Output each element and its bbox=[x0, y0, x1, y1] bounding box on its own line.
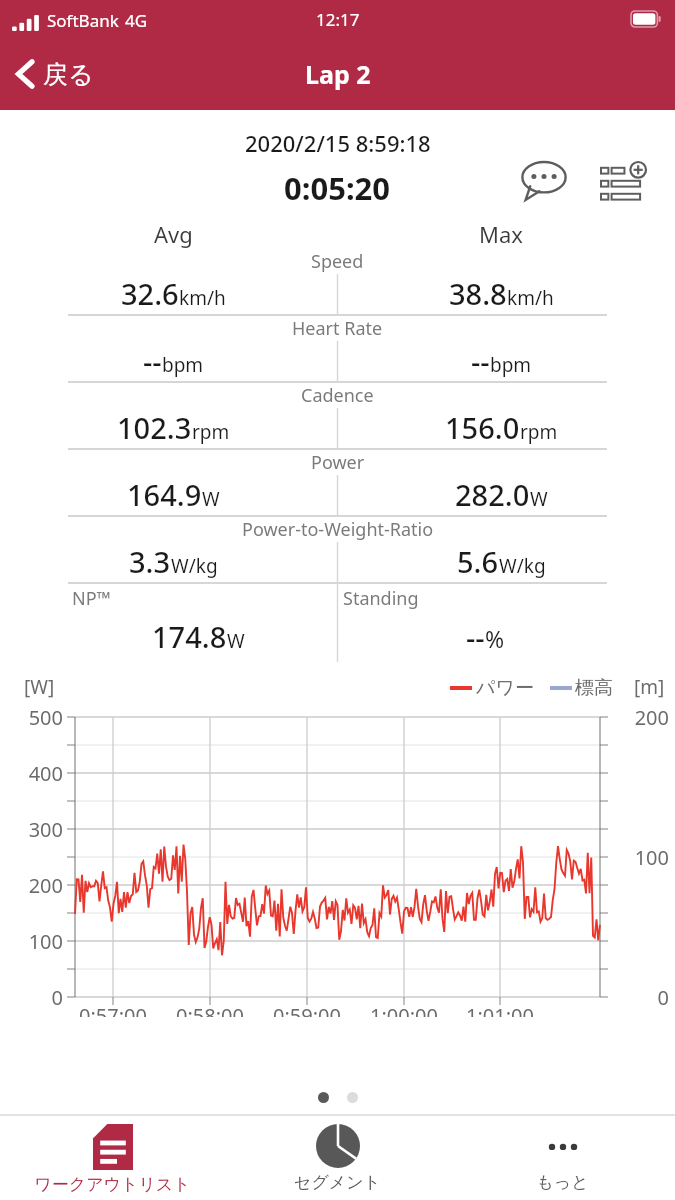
staticText: Heart Rate bbox=[292, 316, 383, 341]
staticText: 0:58:00 bbox=[162, 1002, 258, 1017]
staticText: 300 bbox=[8, 816, 63, 843]
staticText: W/kg bbox=[171, 553, 218, 579]
button[interactable]: ワークアウトリスト bbox=[0, 1116, 225, 1200]
staticText: -- bbox=[471, 341, 490, 380]
staticText: 0:05:20 bbox=[284, 167, 391, 209]
staticText: 1:00:00 bbox=[356, 1002, 452, 1017]
button[interactable]: Add to list bbox=[595, 155, 653, 207]
staticText: Power-to-Weight-Ratio bbox=[242, 517, 434, 542]
staticText: Speed bbox=[311, 249, 364, 274]
staticText: Lap 2 bbox=[305, 57, 371, 91]
button[interactable]: セグメント bbox=[225, 1116, 450, 1200]
staticText: 38.8 bbox=[449, 274, 507, 313]
staticText: W bbox=[227, 628, 245, 654]
staticText: セグメント bbox=[294, 1172, 381, 1193]
staticText: 2020/2/15 8:59:18 bbox=[245, 128, 431, 158]
staticText: Avg bbox=[154, 219, 193, 249]
staticText: 0 bbox=[8, 984, 63, 1011]
staticText: 102.3 bbox=[117, 408, 192, 447]
staticText: 0:59:00 bbox=[259, 1002, 355, 1017]
staticText: 5.6 bbox=[457, 542, 499, 581]
button[interactable]: Comments bbox=[515, 156, 573, 206]
staticText: bpm bbox=[162, 352, 204, 378]
staticText: 1:01:00 bbox=[452, 1002, 548, 1017]
staticText: km/h bbox=[507, 285, 554, 311]
staticText: Max bbox=[479, 219, 523, 249]
staticText: パワー bbox=[476, 676, 534, 700]
staticText: rpm bbox=[192, 419, 230, 445]
staticText: % bbox=[485, 623, 505, 654]
staticText: 戻る bbox=[43, 59, 94, 90]
staticText: 12:17 bbox=[316, 8, 360, 31]
staticText: W/kg bbox=[499, 553, 546, 579]
staticText: 174.8 bbox=[152, 617, 227, 656]
staticText: 0:57:00 bbox=[65, 1002, 161, 1017]
staticText: 156.0 bbox=[445, 408, 520, 447]
staticText: 標高 bbox=[575, 676, 613, 700]
staticText: [W] bbox=[24, 674, 55, 700]
staticText: Standing bbox=[343, 586, 419, 611]
staticText: 100 bbox=[8, 928, 63, 955]
staticText: ワークアウトリスト bbox=[34, 1174, 191, 1195]
staticText: 282.0 bbox=[455, 475, 530, 514]
staticText: 0 bbox=[619, 984, 669, 1011]
staticText: 500 bbox=[8, 704, 63, 731]
staticText: rpm bbox=[520, 419, 558, 445]
staticText: Cadence bbox=[301, 383, 374, 408]
staticText: W bbox=[530, 486, 548, 512]
staticText: Power bbox=[311, 450, 365, 475]
staticText: -- bbox=[466, 617, 485, 656]
staticText: [m] bbox=[634, 674, 665, 700]
staticText: 4G bbox=[125, 9, 148, 32]
staticText: -- bbox=[143, 341, 162, 380]
staticText: 200 bbox=[619, 704, 669, 731]
staticText: 32.6 bbox=[121, 274, 179, 313]
staticText: W bbox=[202, 486, 220, 512]
staticText: km/h bbox=[179, 285, 226, 311]
staticText: 400 bbox=[8, 760, 63, 787]
staticText: 3.3 bbox=[129, 542, 171, 581]
staticText: 100 bbox=[619, 844, 669, 871]
staticText: もっと bbox=[536, 1172, 589, 1193]
staticText: NP™ bbox=[72, 586, 111, 611]
staticText: bpm bbox=[490, 352, 532, 378]
button[interactable]: もっと bbox=[450, 1116, 675, 1200]
button[interactable]: 戻る bbox=[0, 49, 108, 99]
staticText: 164.9 bbox=[127, 475, 202, 514]
staticText: SoftBank bbox=[47, 9, 119, 32]
staticText: 200 bbox=[8, 872, 63, 899]
